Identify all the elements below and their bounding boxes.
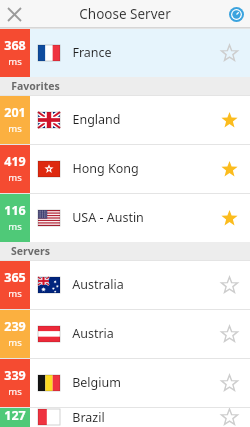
staticText: ms [8,171,22,184]
staticText: England [72,111,121,128]
staticText: Hong Kong [72,160,139,177]
button[interactable]: 201 [0,95,250,144]
staticText: 239 [4,318,26,335]
button[interactable]: Add Belgium to favorites [212,366,246,400]
button[interactable]: Add Austria to favorites [212,317,246,351]
staticText: USA - Austin [72,209,144,226]
staticText: 365 [4,269,26,286]
button[interactable]: 116 [0,193,250,242]
staticText: ms [8,287,22,300]
staticText: ms [8,55,22,68]
staticText: Australia [72,276,124,293]
staticText: 201 [4,104,26,121]
button[interactable]: Add Brazil to favorites [212,407,246,427]
button[interactable]: Add Australia to favorites [212,268,246,302]
staticText: ms [8,220,22,233]
button[interactable]: Remove USA - Austin from favorites [212,201,246,235]
staticText: Servers [11,244,50,258]
staticText: Choose Server [79,5,171,23]
button[interactable]: Close [0,0,28,28]
button[interactable]: 127 [0,407,250,427]
staticText: 339 [4,367,26,384]
button[interactable]: 339 [0,358,250,407]
staticText: ms [8,336,22,349]
button[interactable]: Add France to favorites [212,36,246,70]
button[interactable]: Speed test [222,0,250,28]
staticText: Belgium [72,374,121,391]
staticText: ms [8,122,22,135]
staticText: 419 [4,153,26,170]
button[interactable]: 239 [0,309,250,358]
staticText: France [72,44,112,61]
staticText: Favorites [11,79,60,93]
button[interactable]: Remove England from favorites [212,103,246,137]
button[interactable]: 365 [0,260,250,309]
staticText: 116 [4,202,26,219]
staticText: 127 [4,407,26,424]
button[interactable]: 419 [0,144,250,193]
button[interactable]: Remove Hong Kong from favorites [212,152,246,186]
staticText: Brazil [72,409,105,426]
staticText: ms [8,385,22,398]
staticText: 368 [4,37,26,54]
staticText: Austria [72,325,114,342]
button[interactable]: 368 [0,28,250,77]
